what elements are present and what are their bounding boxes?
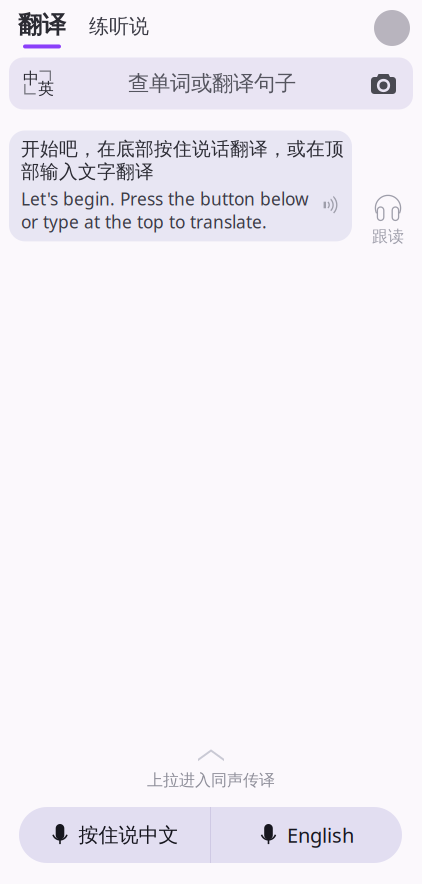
button[interactable]: 翻译	[0, 10, 78, 48]
button[interactable]: Account	[374, 10, 422, 46]
staticText: 中	[23, 68, 39, 88]
staticText: 翻译	[18, 10, 66, 39]
button[interactable]: 跟读	[352, 130, 404, 246]
staticText: English	[287, 822, 354, 848]
staticText: Let's begin. Press the button below or t…	[21, 187, 309, 233]
staticText: 跟读	[372, 226, 404, 246]
staticText: 英	[38, 79, 54, 98]
button[interactable]: English	[211, 807, 402, 863]
staticText: 上拉进入同声传译	[147, 770, 275, 790]
button[interactable]: 练听说	[78, 10, 160, 39]
staticText: 查单词或翻译句子	[128, 70, 296, 97]
staticText: 开始吧，在底部按住说话翻译，或在顶部输入文字翻译	[21, 137, 344, 183]
button[interactable]: 按住说中文	[19, 807, 210, 863]
button[interactable]: Play translation	[323, 194, 344, 215]
staticText: 练听说	[89, 14, 149, 39]
staticText: 按住说中文	[78, 823, 178, 847]
button[interactable]: 中	[9, 57, 413, 109]
